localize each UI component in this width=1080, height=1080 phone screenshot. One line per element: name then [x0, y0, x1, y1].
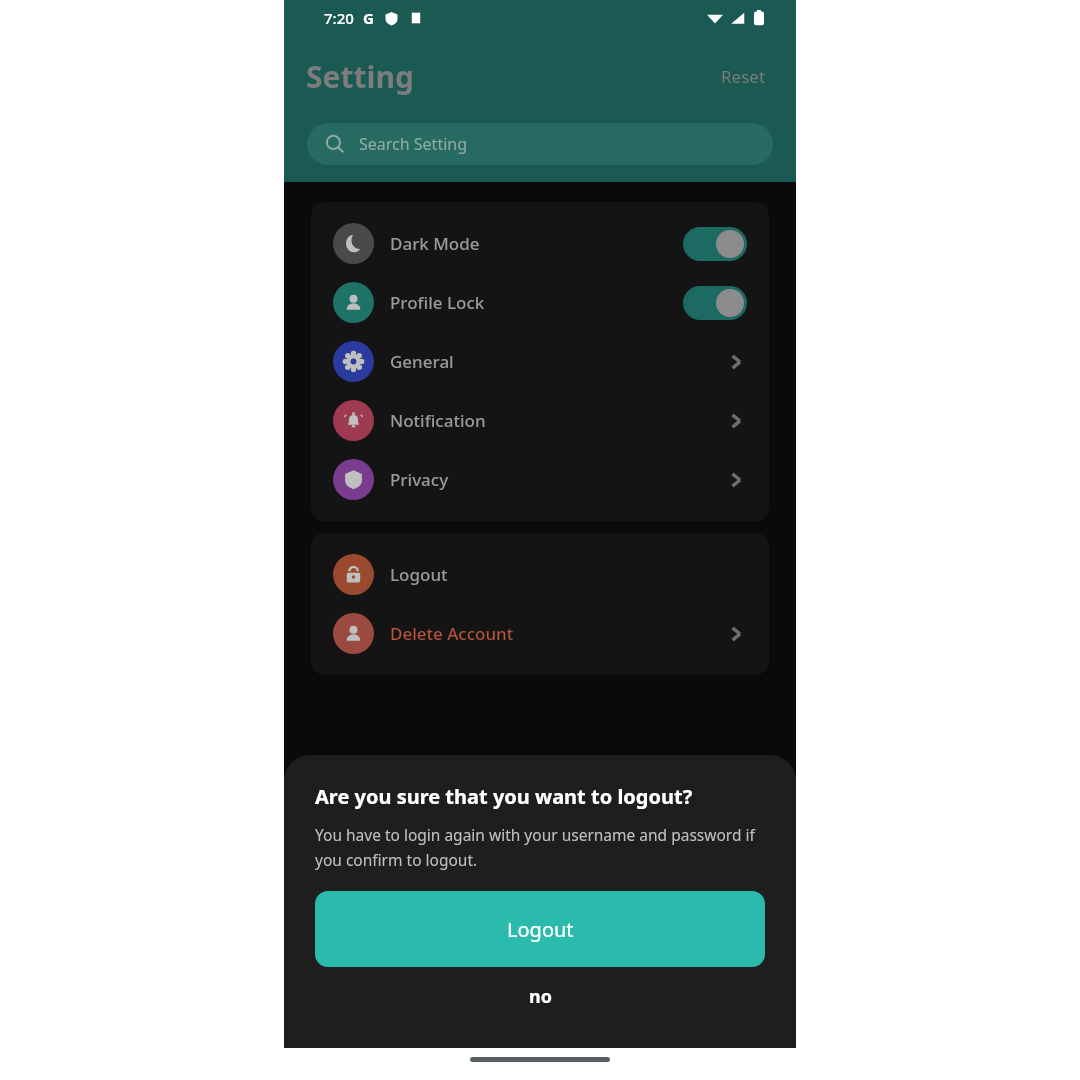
button[interactable]: Notification — [311, 391, 769, 450]
button[interactable]: Dark Mode toggle — [683, 227, 747, 261]
staticText: Setting — [306, 56, 414, 97]
staticText: 7:20 — [324, 8, 354, 28]
button[interactable]: Reset — [715, 59, 772, 94]
staticText: You have to login again with your userna… — [315, 824, 765, 871]
staticText: Privacy — [390, 468, 449, 491]
staticText: Delete Account — [390, 622, 514, 645]
staticText: Profile Lock — [390, 291, 485, 314]
staticText: Reset — [721, 65, 766, 88]
button[interactable]: Search Setting — [307, 123, 773, 165]
staticText: Dark Mode — [390, 232, 480, 255]
staticText: Notification — [390, 409, 486, 432]
button[interactable]: General — [311, 332, 769, 391]
staticText: no — [529, 984, 552, 1009]
staticText: Logout — [390, 563, 448, 586]
button[interactable]: Profile Lock — [311, 273, 769, 332]
button[interactable]: Profile Lock toggle — [683, 286, 747, 320]
button[interactable]: Privacy — [311, 450, 769, 509]
button[interactable]: Logout — [315, 891, 765, 967]
button[interactable]: Delete Account — [311, 604, 769, 663]
button[interactable]: no — [315, 967, 765, 1026]
staticText: General — [390, 350, 454, 373]
button[interactable]: Logout — [311, 545, 769, 604]
staticText: Search Setting — [359, 133, 468, 155]
staticText: Logout — [507, 916, 574, 943]
button[interactable]: Dark Mode — [311, 214, 769, 273]
staticText: Are you sure that you want to logout? — [315, 783, 693, 810]
staticText: G — [363, 8, 374, 28]
